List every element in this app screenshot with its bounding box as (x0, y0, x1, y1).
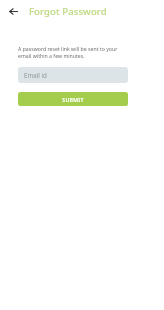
staticText: Forgot Password (29, 5, 107, 18)
button[interactable]: SUBMIT (18, 92, 128, 106)
button[interactable]: Back (5, 3, 21, 19)
staticText: A password reset link will be sent to yo… (18, 45, 128, 59)
button[interactable]: Email id (18, 67, 128, 83)
staticText: SUBMIT (62, 96, 84, 103)
staticText: Email id (24, 71, 47, 79)
